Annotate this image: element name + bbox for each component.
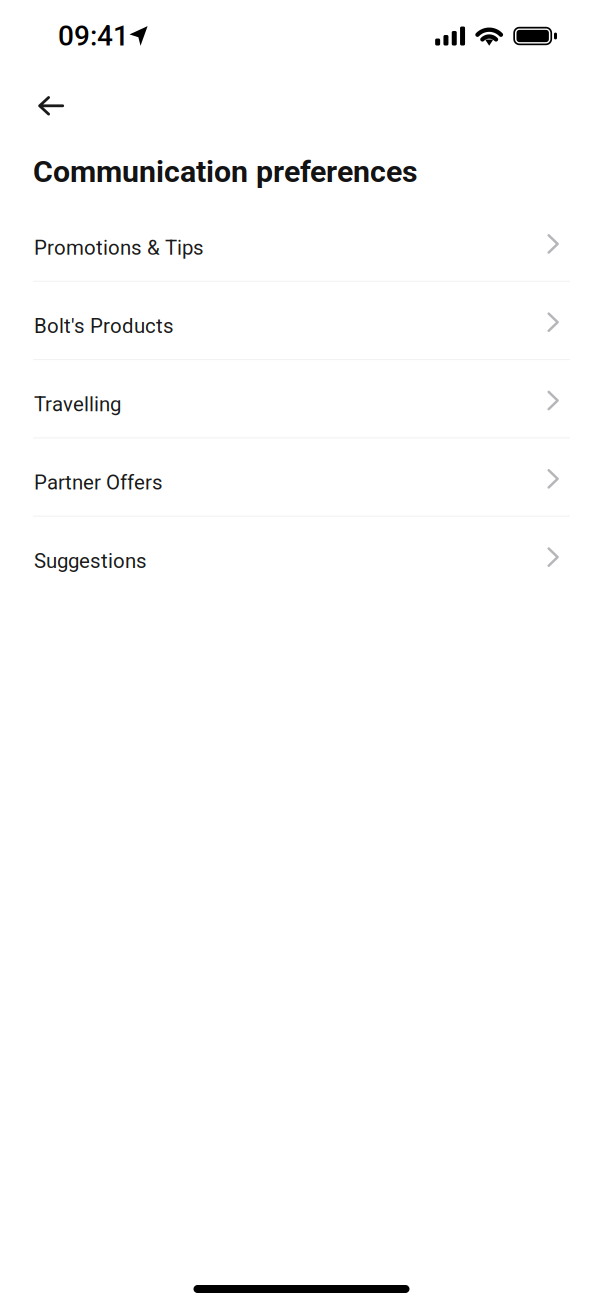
button[interactable]: Partner Offers <box>0 438 603 516</box>
button[interactable]: Bolt's Products <box>0 282 603 359</box>
staticText: Bolt's Products <box>34 314 174 338</box>
button[interactable]: Back <box>27 84 75 128</box>
button[interactable]: Promotions & Tips <box>0 203 603 281</box>
staticText: Promotions & Tips <box>34 236 204 260</box>
staticText: Suggestions <box>34 549 147 573</box>
staticText: Partner Offers <box>34 471 163 495</box>
staticText: 09:41 <box>58 20 129 52</box>
button[interactable]: Travelling <box>0 360 603 437</box>
button[interactable]: Suggestions <box>0 517 603 594</box>
staticText: Communication preferences <box>33 154 418 189</box>
staticText: Travelling <box>34 392 121 416</box>
